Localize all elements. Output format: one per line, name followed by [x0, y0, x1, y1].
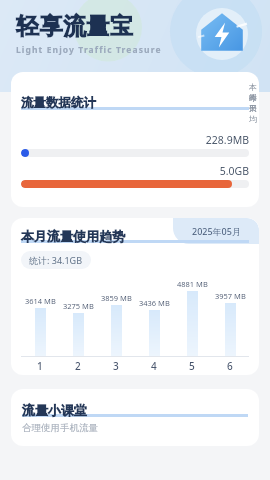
staticText: 5: [189, 359, 195, 373]
staticText: 3275 MB: [63, 301, 94, 311]
staticText: 2: [75, 359, 81, 373]
staticText: 3614 MB: [25, 296, 56, 306]
staticText: 6: [227, 359, 233, 373]
staticText: Light Enjoy Traffic Treasure: [16, 44, 162, 56]
staticText: 4881 MB: [177, 279, 208, 289]
staticText: 流量数据统计: [21, 95, 96, 111]
staticText: 流量小课堂: [22, 402, 87, 418]
staticText: 3: [113, 359, 119, 373]
staticText: 合理使用手机流量: [22, 422, 98, 434]
staticText: 3957 MB: [215, 291, 246, 301]
staticText: 4: [151, 359, 157, 373]
staticText: 统计: 34.1GB: [29, 254, 83, 266]
button[interactable]: 流量小课堂: [11, 389, 259, 446]
staticText: 3859 MB: [101, 293, 132, 303]
staticText: 3436 MB: [139, 298, 170, 308]
staticText: 228.9MB: [21, 133, 249, 147]
other: App logo: [196, 8, 248, 60]
staticText: 1: [37, 359, 43, 373]
staticText: 5.0GB: [21, 164, 249, 178]
staticText: 轻享流量宝: [16, 12, 134, 41]
staticText: 本月流量使用趋势: [21, 228, 125, 244]
staticText: 2025年05月: [192, 225, 241, 237]
